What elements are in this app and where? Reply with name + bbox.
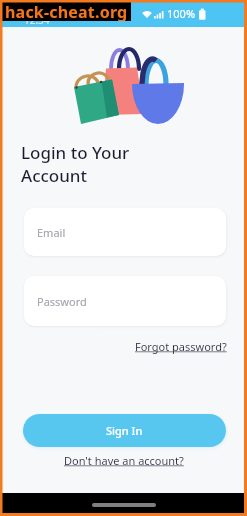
staticText: 12:54	[24, 13, 50, 27]
button[interactable]: Sign In	[23, 414, 226, 447]
button[interactable]: Forgot password?	[135, 339, 227, 354]
staticText: Sign In	[106, 423, 143, 438]
button[interactable]: Don't have an account?	[64, 453, 184, 468]
staticText: Don't have an account?	[64, 453, 184, 468]
staticText: Password	[37, 294, 87, 309]
staticText: 100%	[167, 6, 196, 21]
staticText: Forgot password?	[135, 339, 227, 354]
staticText: Login to Your	[21, 141, 130, 164]
button[interactable]: Password	[24, 276, 226, 326]
staticText: Email	[37, 225, 66, 240]
button[interactable]: Email	[24, 208, 226, 256]
staticText: hack-cheat.org	[5, 1, 128, 21]
staticText: Account	[21, 164, 88, 187]
